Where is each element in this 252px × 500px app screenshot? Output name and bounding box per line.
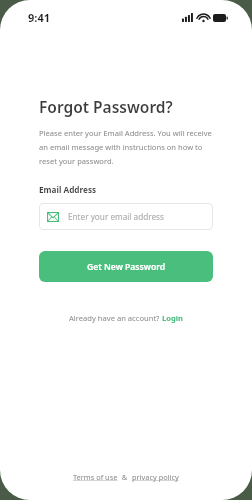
staticText: Terms of use <box>73 472 118 482</box>
staticText: Login <box>162 313 183 323</box>
staticText: 9:41 <box>28 10 50 25</box>
button[interactable]: Get New Password <box>39 251 213 282</box>
staticText: Get New Password <box>87 261 166 273</box>
button[interactable]: Terms of use <box>73 472 118 482</box>
staticText: Forgot Password? <box>39 96 173 117</box>
staticText: Please enter your Email Address. You wil… <box>39 128 212 166</box>
staticText: Email Address <box>39 184 97 195</box>
button[interactable]: privacy policy <box>132 472 179 482</box>
staticText: Enter your email address <box>68 211 164 222</box>
button[interactable]: Email <box>39 203 213 230</box>
staticText: Already have an account? <box>69 313 162 323</box>
button[interactable]: Already have an account? <box>39 313 213 323</box>
staticText: & <box>118 472 132 482</box>
staticText: privacy policy <box>132 472 179 482</box>
other: Email <box>47 212 59 222</box>
